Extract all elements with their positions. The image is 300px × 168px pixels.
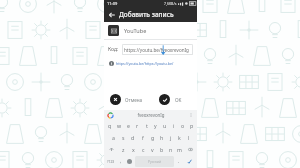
staticText: v [151,146,154,153]
button[interactable]: c [138,143,148,155]
staticText: y [154,122,157,129]
button[interactable]: ?123 [105,156,117,167]
staticText: s [122,134,125,141]
button[interactable]: p [187,119,196,131]
staticText: 7,6KB/s [164,1,177,6]
staticText: z [122,146,125,153]
staticText: YouTube [124,27,147,34]
staticText: r [136,122,139,129]
button[interactable]: Удалить [184,143,196,155]
button[interactable]: w [115,119,124,131]
staticText: Код: [108,46,119,53]
button[interactable]: Пробел [135,156,174,167]
button[interactable]: Ещё [188,112,194,118]
button[interactable]: OK [159,94,182,105]
staticText: fveoxrevonIg [137,112,165,118]
button[interactable]: f [138,131,148,143]
button[interactable]: Запятая [117,156,125,167]
button[interactable]: Shift [105,143,118,155]
staticText: u [163,122,167,129]
button[interactable]: k [175,131,184,143]
staticText: https://youtu.be/https://youtu.be/fveoxr… [116,61,192,66]
button[interactable]: m [175,143,184,155]
staticText: o [181,122,185,129]
staticText: n [169,146,173,153]
staticText: t [146,122,148,129]
button[interactable]: s [118,131,128,143]
button[interactable]: n [166,143,175,155]
button[interactable]: u [160,119,169,131]
staticText: , [120,158,122,165]
staticText: i [173,122,175,129]
staticText: f [142,134,144,141]
staticText: g [151,134,155,141]
staticText: . [178,158,180,165]
staticText: h [160,134,164,141]
button[interactable]: Назад [104,7,119,22]
button[interactable]: e [124,119,133,131]
button[interactable]: z [118,143,128,155]
button[interactable]: Google [107,112,113,118]
button[interactable]: t [142,119,151,131]
button[interactable]: a [108,131,118,143]
button[interactable]: d [128,131,138,143]
staticText: ?123 [107,159,115,164]
button[interactable]: YouTube [104,22,197,39]
button[interactable]: j [166,131,175,143]
button[interactable]: b [157,143,166,155]
button[interactable]: q [105,119,115,131]
staticText: d [131,134,135,141]
staticText: c [142,146,145,153]
button[interactable]: h [157,131,166,143]
staticText: j [170,134,172,141]
button[interactable]: y [151,119,160,131]
button[interactable]: i [169,119,178,131]
staticText: 11:09 [107,1,118,6]
staticText: a [112,134,115,141]
staticText: Отмена [125,97,143,103]
staticText: e [127,122,130,129]
button[interactable]: https://youtu.be/https://youtu.be/fveoxr… [104,59,197,68]
staticText: x [132,146,135,153]
staticText: https://youtu.be/fveoxrevonIg [124,47,189,53]
button[interactable]: Отмена [110,94,147,105]
staticText: k [178,134,181,141]
staticText: Русский [148,159,161,164]
staticText: w [117,122,122,129]
button[interactable]: r [133,119,142,131]
staticText: b [160,146,164,153]
staticText: Добавить запись [119,10,174,19]
button[interactable]: Ввод [183,156,196,167]
staticText: m [177,146,182,153]
button[interactable]: https://youtu.be/fveoxrevonIg [122,44,193,55]
button[interactable]: v [148,143,157,155]
staticText: OK [175,97,182,103]
staticText: l [188,134,190,141]
button[interactable]: l [184,131,193,143]
button[interactable]: g [148,131,157,143]
button[interactable]: o [178,119,187,131]
button[interactable]: Эмодзи [125,156,134,167]
staticText: p [190,122,194,129]
button[interactable]: x [128,143,138,155]
button[interactable]: Точка [175,156,183,167]
staticText: q [108,122,112,129]
